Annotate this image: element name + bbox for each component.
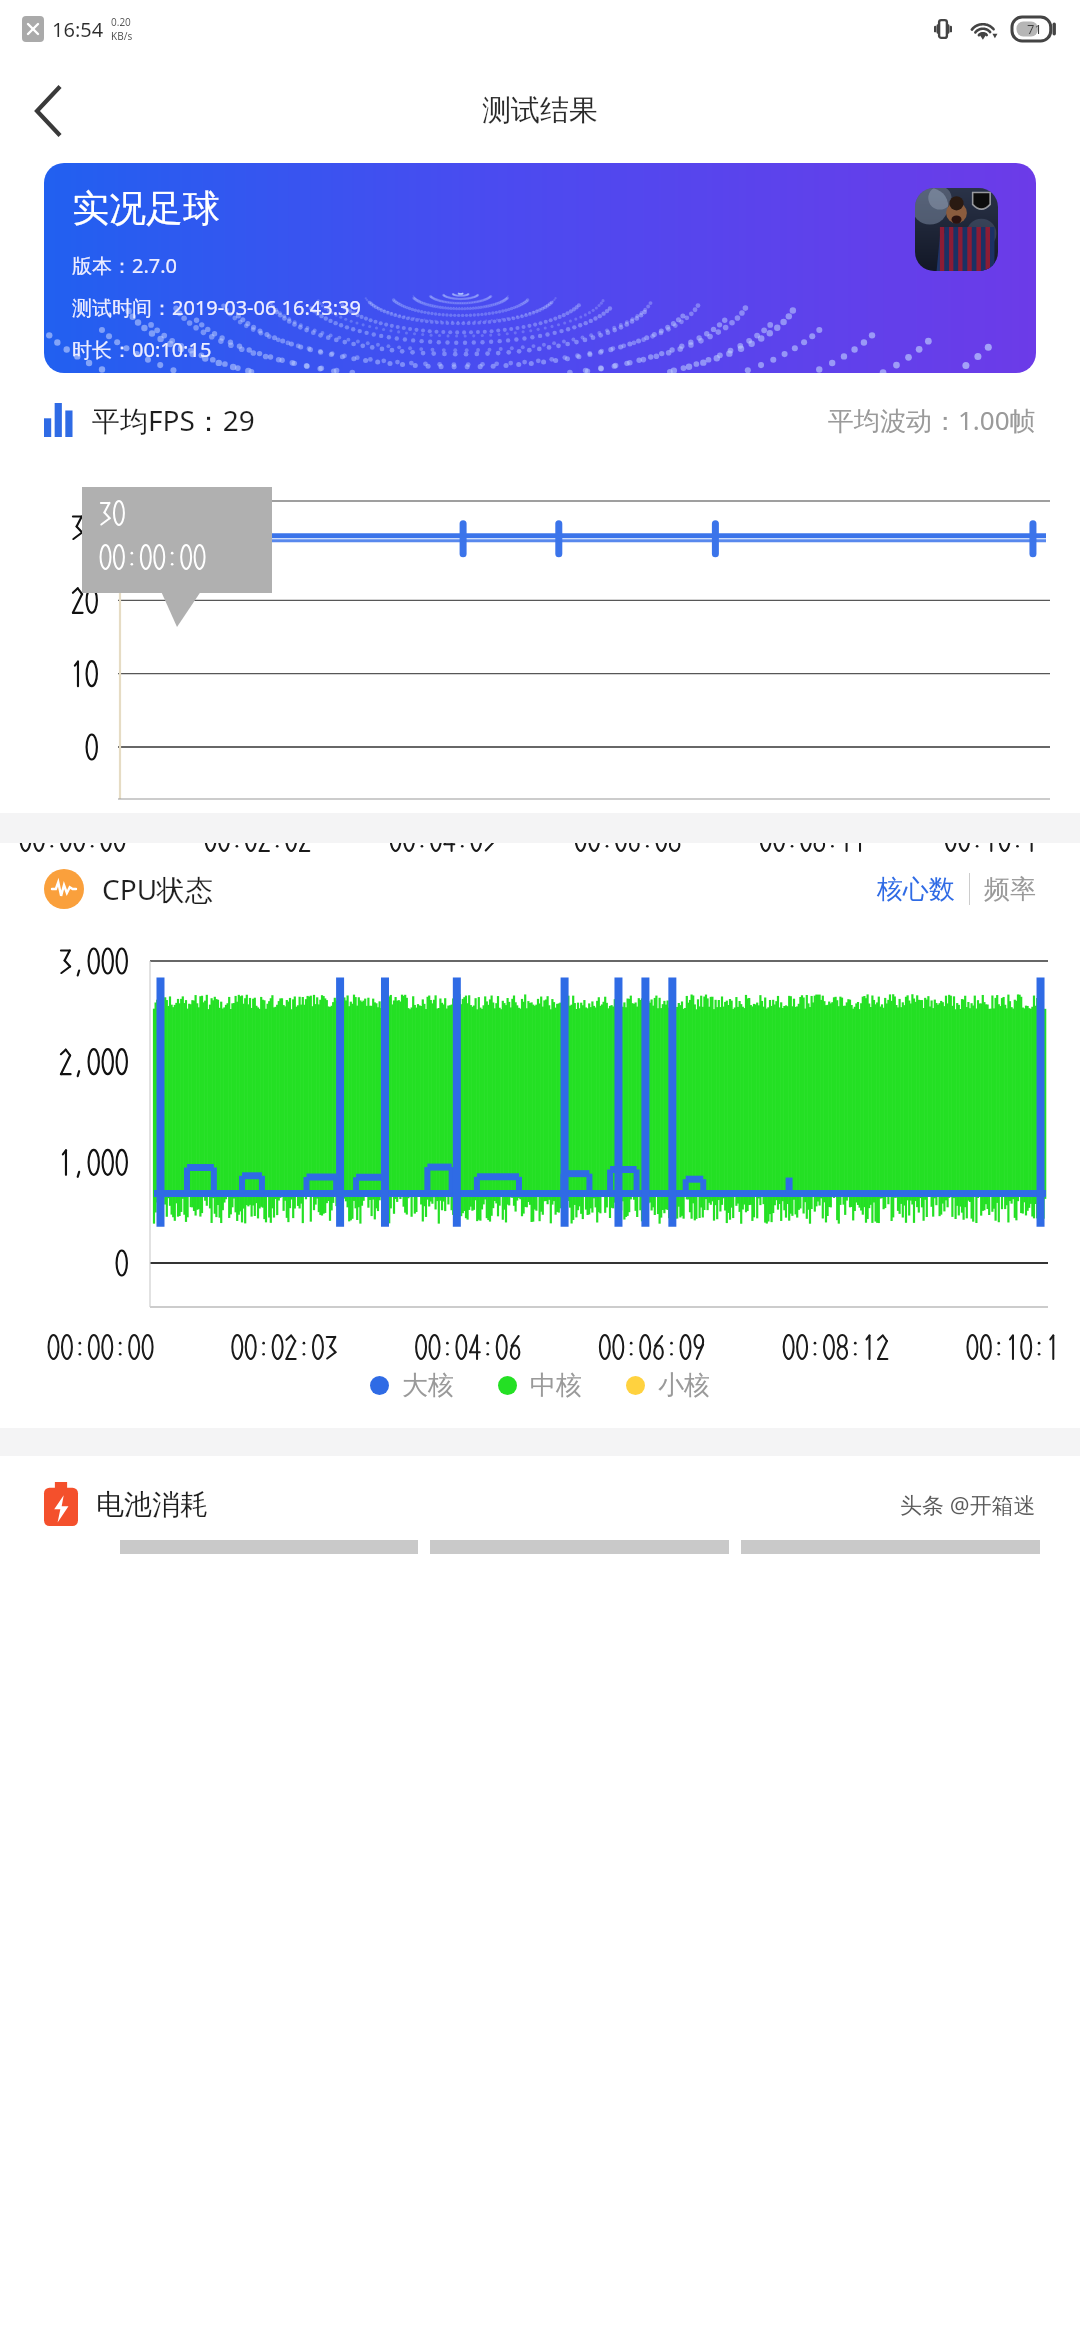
staticText: 71 [1027,20,1042,38]
staticText: 测试时间：2019-03-06 16:43:39 [72,294,361,321]
staticText: 16:54 [52,16,104,43]
staticText: 电池消耗 [96,1487,208,1522]
staticText: 头条 @开箱迷 [900,1489,1036,1519]
button[interactable]: 小核 [626,1369,710,1402]
staticText: 频率 [984,873,1036,906]
staticText: 大核 [402,1369,454,1402]
staticText: 版本：2.7.0 [72,252,178,279]
button[interactable]: 频率 [984,873,1036,906]
button[interactable]: 核心数 [877,873,955,906]
button[interactable]: 大核 [370,1369,454,1402]
staticText: 实况足球 [72,185,220,232]
staticText: 平均FPS：29 [92,401,255,439]
button[interactable]: Back [10,72,88,150]
staticText: 核心数 [877,873,955,906]
staticText: 平均波动：1.00帧 [828,402,1036,438]
staticText: 测试结果 [482,92,598,129]
staticText: 中核 [530,1369,582,1402]
staticText: KB/s [111,29,133,43]
button[interactable]: 中核 [498,1369,582,1402]
staticText: 小核 [658,1369,710,1402]
staticText: 0.20 [111,15,131,29]
staticText: 时长：00:10:15 [72,336,212,363]
staticText: CPU状态 [102,870,214,908]
button[interactable]: 实况足球 [44,163,1036,373]
